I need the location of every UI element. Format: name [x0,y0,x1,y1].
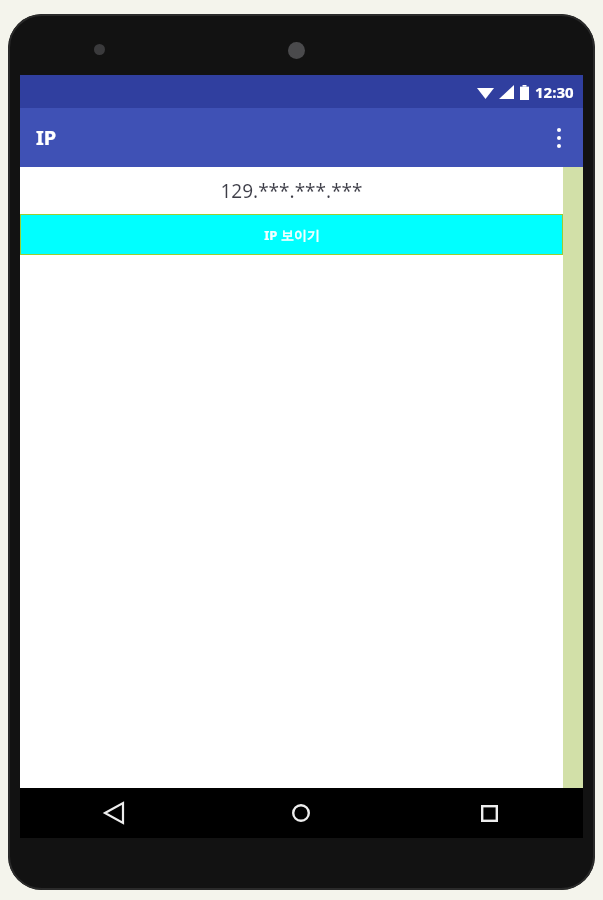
button[interactable]: Home [207,788,395,838]
button[interactable]: More options [535,114,583,162]
staticText: IP 보이기 [264,226,320,244]
staticText: 12:30 [535,82,574,102]
button[interactable]: IP 보이기 [20,214,563,255]
button[interactable]: Recents [395,788,583,838]
staticText: IP [36,124,57,151]
staticText: 129.***.***.*** [220,178,363,204]
button[interactable]: Back [20,788,207,838]
